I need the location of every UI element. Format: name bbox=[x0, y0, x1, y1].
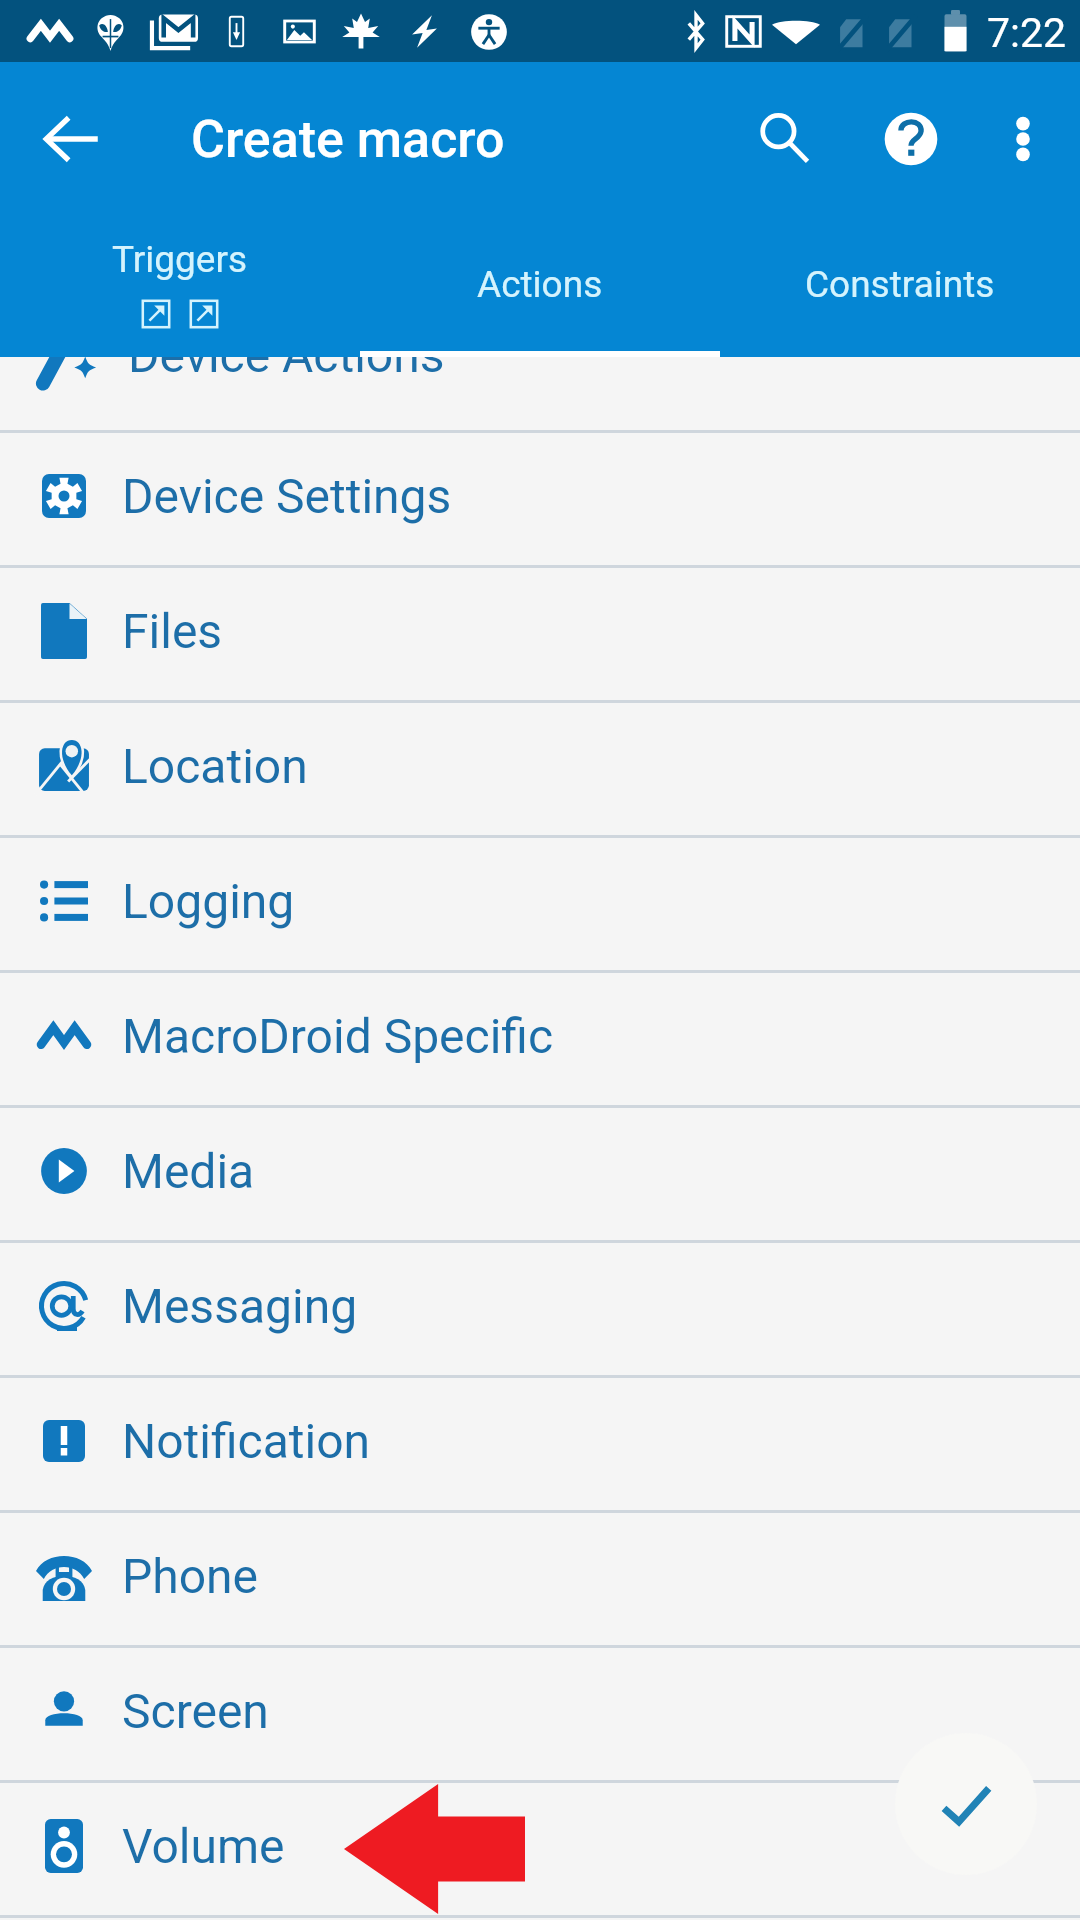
staticText: Triggers bbox=[112, 238, 248, 281]
staticText: Notification bbox=[122, 1413, 371, 1469]
button[interactable]: Triggers bbox=[0, 216, 360, 357]
button[interactable]: Messaging bbox=[0, 1243, 1080, 1375]
button[interactable]: Screen bbox=[0, 1648, 1080, 1780]
button[interactable]: Phone bbox=[0, 1513, 1080, 1645]
staticText: Device Settings bbox=[122, 468, 452, 524]
staticText: Device Actions bbox=[128, 357, 445, 383]
button[interactable]: MacroDroid Specific bbox=[0, 973, 1080, 1105]
button[interactable]: Search bbox=[734, 89, 834, 189]
button[interactable]: Back bbox=[24, 91, 120, 187]
button[interactable]: Notification bbox=[0, 1378, 1080, 1510]
staticText: Files bbox=[122, 603, 223, 659]
button[interactable]: Help bbox=[861, 89, 961, 189]
staticText: MacroDroid Specific bbox=[122, 1008, 554, 1064]
staticText: Media bbox=[122, 1143, 255, 1199]
staticText: Messaging bbox=[122, 1278, 358, 1334]
staticText: Logging bbox=[122, 873, 295, 929]
button[interactable]: Files bbox=[0, 568, 1080, 700]
button[interactable]: More options bbox=[973, 89, 1073, 189]
staticText: 7:22 bbox=[987, 9, 1067, 57]
button[interactable]: Logging bbox=[0, 838, 1080, 970]
staticText: Actions bbox=[477, 263, 603, 306]
button[interactable]: Confirm bbox=[895, 1733, 1037, 1875]
staticText: Screen bbox=[122, 1683, 269, 1739]
staticText: Phone bbox=[122, 1548, 259, 1604]
staticText: Create macro bbox=[191, 109, 505, 170]
button[interactable]: Media bbox=[0, 1108, 1080, 1240]
button[interactable]: Device Actions bbox=[0, 357, 1080, 430]
button[interactable]: Location bbox=[0, 703, 1080, 835]
button[interactable]: Actions bbox=[360, 216, 720, 357]
button[interactable]: Constraints bbox=[720, 216, 1080, 357]
button[interactable]: Volume bbox=[0, 1783, 1080, 1915]
staticText: Constraints bbox=[805, 263, 995, 306]
staticText: Volume bbox=[122, 1818, 285, 1874]
button[interactable]: Device Settings bbox=[0, 433, 1080, 565]
staticText: Location bbox=[122, 738, 308, 794]
